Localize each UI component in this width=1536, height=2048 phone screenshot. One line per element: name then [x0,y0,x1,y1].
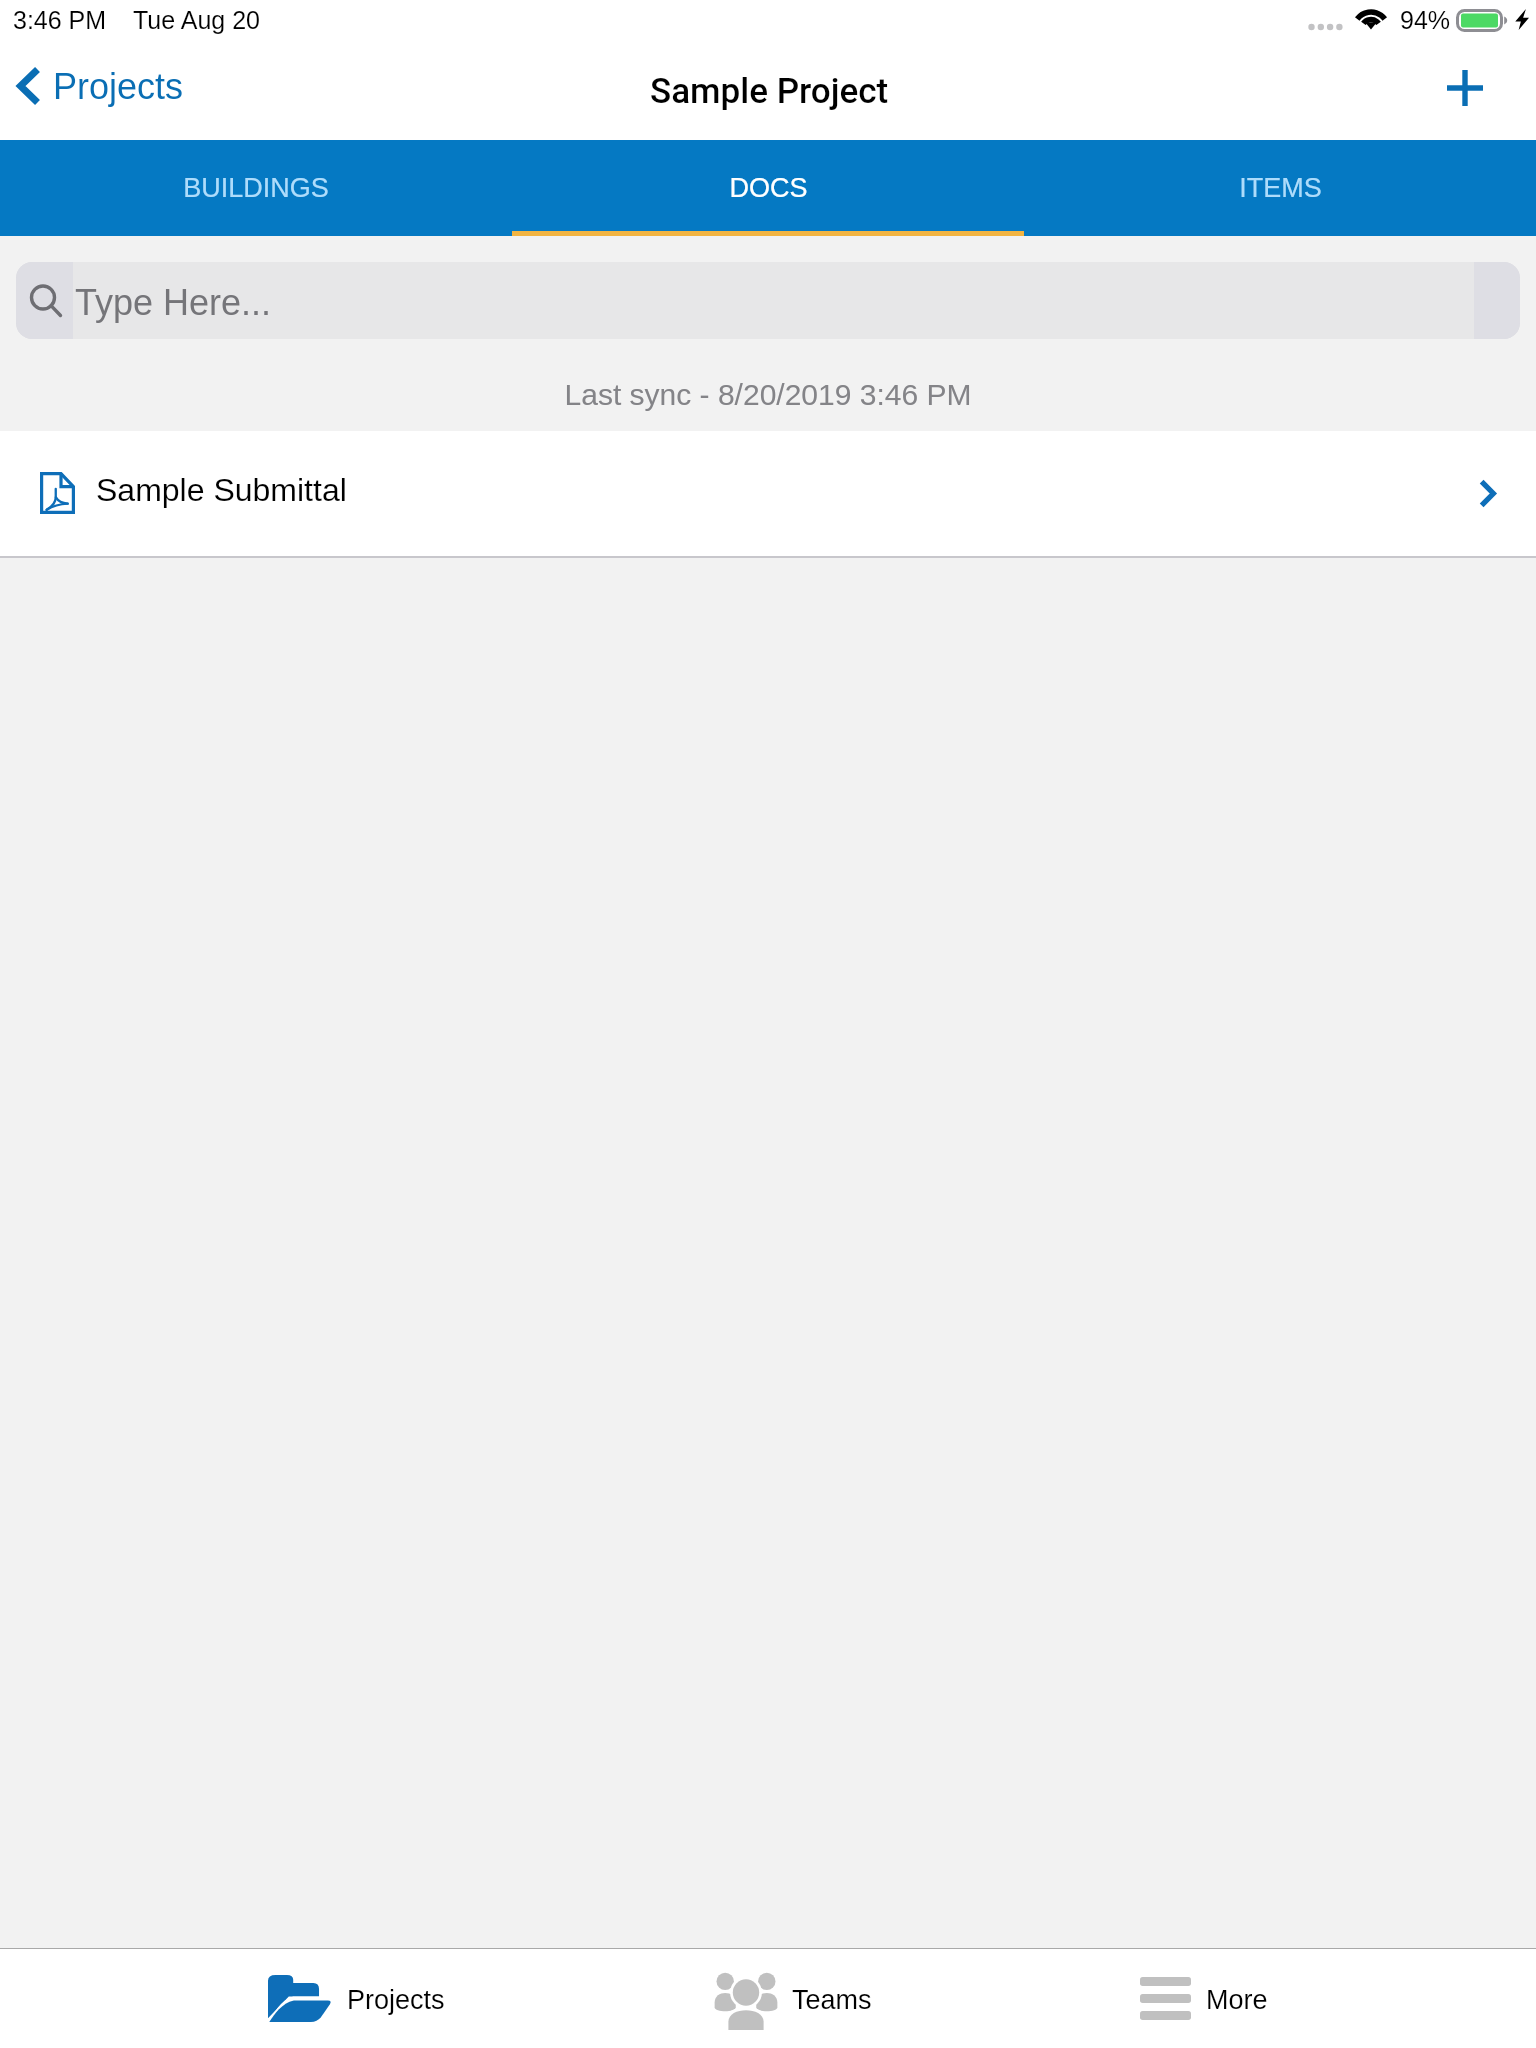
button[interactable]: Sample Submittal [0,431,1536,556]
button[interactable]: Projects [268,1949,445,2048]
staticText: Type Here... [75,282,272,322]
button[interactable]: Teams [714,1949,872,2048]
staticText: Sample Project [650,71,889,112]
staticText: 3:46 PM [13,6,107,34]
staticText: Tue Aug 20 [133,6,260,34]
staticText: Sample Submittal [96,472,347,508]
button[interactable]: Add [1426,45,1536,140]
button[interactable]: More [1140,1949,1268,2048]
button[interactable]: ITEMS [1024,140,1536,231]
button[interactable]: Type Here... [16,262,1520,339]
staticText: Last sync - 8/20/2019 3:46 PM [0,378,1536,412]
staticText: 94% [1400,6,1451,34]
button[interactable]: DOCS [512,140,1024,231]
button[interactable]: BUILDINGS [0,140,512,231]
staticText: More [1206,1985,1268,2015]
staticText: Projects [347,1985,445,2015]
staticText: ITEMS [1239,173,1322,203]
staticText: BUILDINGS [183,173,329,203]
staticText: Teams [792,1985,872,2015]
staticText: Projects [53,66,184,106]
staticText: DOCS [729,173,808,203]
button[interactable]: Projects [0,45,200,140]
